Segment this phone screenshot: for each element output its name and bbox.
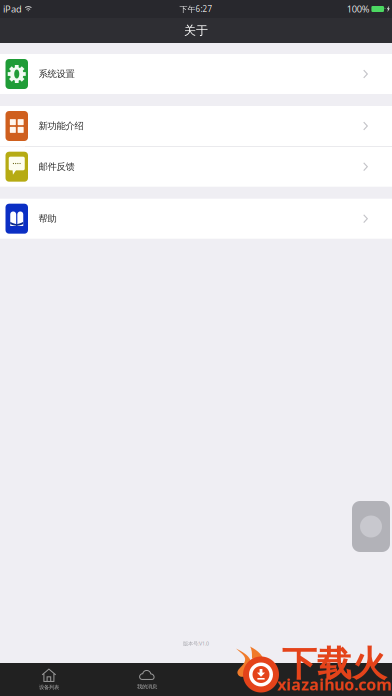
button[interactable]: 新功能介绍 <box>0 106 392 146</box>
staticText: 版本号:V1.0 <box>183 640 209 647</box>
staticText: 系统设置 <box>38 68 74 80</box>
staticText: 设备列表 <box>39 684 59 691</box>
staticText: 我的消息 <box>137 683 157 690</box>
staticText: xiazaihuo.com <box>277 674 392 695</box>
staticText: 100% <box>347 3 370 15</box>
staticText: 下载火 <box>282 643 387 685</box>
staticText: 下午6:27 <box>179 4 212 14</box>
button[interactable]: 帮助 <box>0 199 392 239</box>
button[interactable]: 我的消息 <box>98 663 196 696</box>
button[interactable]: 系统设置 <box>0 54 392 94</box>
button[interactable]: 设备列表 <box>0 663 98 696</box>
staticText: 关于 <box>184 23 208 38</box>
button[interactable]: 邮件反馈 <box>0 147 392 187</box>
staticText: 邮件反馈 <box>38 161 74 172</box>
staticText: 新功能介绍 <box>38 120 83 132</box>
button[interactable]: AssistiveTouch <box>352 501 390 552</box>
staticText: 帮助 <box>38 213 56 224</box>
staticText: iPad <box>3 3 22 15</box>
